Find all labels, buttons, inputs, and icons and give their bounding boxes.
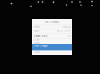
staticText: Morning — [62, 25, 70, 28]
staticText: Save Changes — [34, 44, 48, 47]
staticText: Cancel — [34, 51, 41, 54]
staticText: Notes — [34, 42, 40, 45]
staticText: On — [67, 35, 70, 38]
button[interactable]: Repeat Daily — [32, 34, 72, 38]
staticText: Edit Schedule — [45, 21, 59, 23]
staticText: Repeat Daily — [34, 35, 48, 38]
staticText: Jun 12, 2024 — [56, 29, 70, 32]
button[interactable]: Alert — [32, 38, 72, 42]
button[interactable]: Date — [32, 29, 72, 33]
button[interactable]: Name — [32, 25, 72, 29]
button[interactable]: Cancel — [32, 50, 72, 54]
staticText: Alert — [34, 39, 40, 42]
staticText: Date — [34, 29, 39, 32]
staticText: Name — [34, 25, 40, 28]
button[interactable]: Notes — [32, 42, 72, 45]
button[interactable]: Save Changes — [32, 44, 72, 50]
